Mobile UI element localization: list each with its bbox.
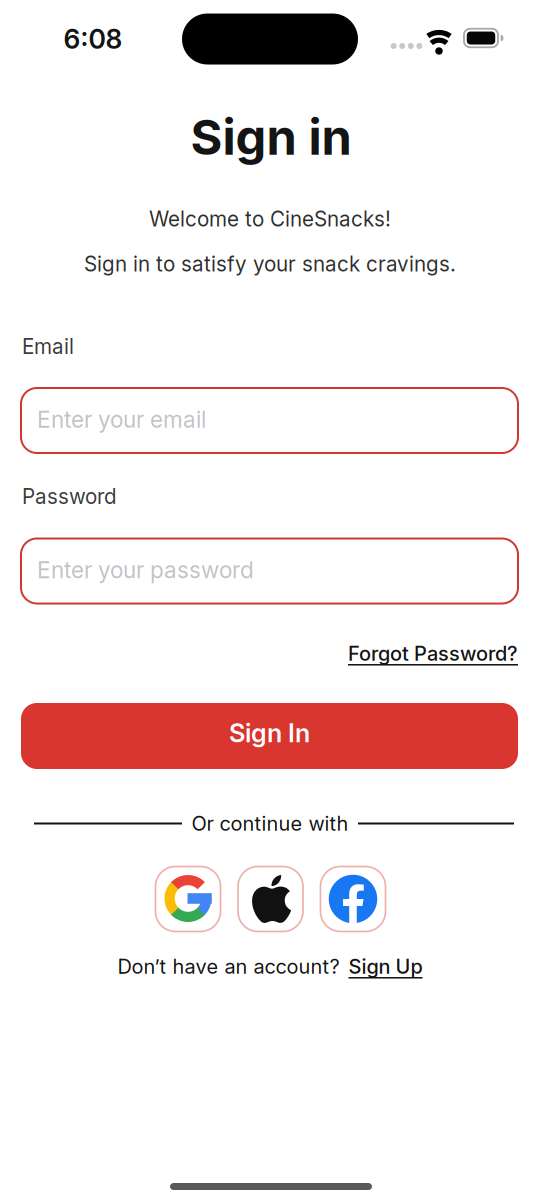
staticText: Sign Up: [348, 954, 422, 979]
staticText: Enter your password: [37, 556, 254, 584]
button[interactable]: [155, 866, 220, 931]
staticText: Sign In: [229, 718, 310, 748]
staticText: Don’t have an account?: [117, 954, 339, 979]
staticText: Or continue with: [191, 811, 348, 836]
button[interactable]: [238, 866, 303, 931]
button[interactable]: [320, 866, 385, 931]
button[interactable]: Sign In: [21, 703, 518, 769]
staticText: Forgot Password?: [348, 641, 518, 666]
button[interactable]: Sign Up: [348, 954, 422, 979]
button[interactable]: Enter your password: [21, 538, 518, 603]
staticText: Enter your email: [37, 406, 206, 433]
staticText: 6:08: [63, 23, 122, 55]
staticText: Password: [22, 484, 117, 509]
button[interactable]: Enter your email: [21, 388, 518, 453]
staticText: Sign in to satisfy your snack cravings.: [84, 251, 456, 276]
staticText: Email: [22, 334, 74, 359]
staticText: Welcome to CineSnacks!: [149, 206, 391, 231]
button[interactable]: Forgot Password?: [348, 641, 518, 666]
staticText: Sign in: [190, 108, 351, 166]
